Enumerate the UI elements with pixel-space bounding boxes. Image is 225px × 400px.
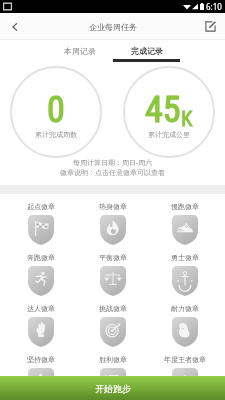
staticText: 企业每周任务	[89, 22, 137, 32]
staticText: 本周记录	[64, 46, 96, 56]
button[interactable]: 奔跑微章	[4, 249, 77, 300]
button[interactable]: 耐力微章	[149, 300, 221, 351]
staticText: 6:10	[206, 1, 222, 12]
staticText: 累计完成公里	[148, 130, 190, 139]
staticText: 慢跑微章	[171, 202, 199, 211]
staticText: 年度王者微章	[164, 355, 206, 364]
button[interactable]: 本周记录	[46, 40, 113, 62]
button[interactable]: 完成记录	[113, 40, 180, 62]
button[interactable]: 年度王者微章	[149, 351, 221, 400]
staticText: 0	[47, 89, 65, 131]
staticText: 平衡微章	[99, 253, 127, 262]
staticText: 胜利微章	[99, 355, 127, 364]
staticText: 热身微章	[99, 202, 127, 211]
staticText: K	[181, 107, 193, 132]
staticText: 挑战微章	[99, 304, 127, 313]
staticText: 奔跑微章	[27, 253, 55, 262]
staticText: 45	[145, 89, 181, 131]
button[interactable]: 起点微章	[4, 198, 77, 249]
staticText: 耐力微章	[171, 304, 199, 313]
staticText: 坚持微章	[27, 355, 55, 364]
staticText: 累计完成周数	[35, 130, 77, 139]
button[interactable]: 坚持微章	[4, 351, 77, 400]
staticText: 开始跑步	[95, 383, 131, 394]
button[interactable]: 慢跑微章	[149, 198, 221, 249]
button[interactable]: 开始跑步	[0, 376, 225, 400]
button[interactable]: 达人微章	[4, 300, 77, 351]
button[interactable]: 勇士微章	[149, 249, 221, 300]
staticText: 勇士微章	[171, 253, 199, 262]
button[interactable]: Edit	[195, 13, 225, 40]
button[interactable]: Back	[0, 13, 30, 40]
staticText: 每周计算日期：周日-周六	[73, 158, 153, 168]
button[interactable]: 热身微章	[77, 198, 149, 249]
button[interactable]: 平衡微章	[77, 249, 149, 300]
staticText: 起点微章	[27, 202, 55, 211]
staticText: 达人微章	[27, 304, 55, 313]
button[interactable]: 挑战微章	[77, 300, 149, 351]
button[interactable]: 胜利微章	[77, 351, 149, 400]
staticText: 完成记录	[131, 46, 163, 56]
staticText: 微章说明：点击任意微章可以查看	[60, 168, 165, 177]
